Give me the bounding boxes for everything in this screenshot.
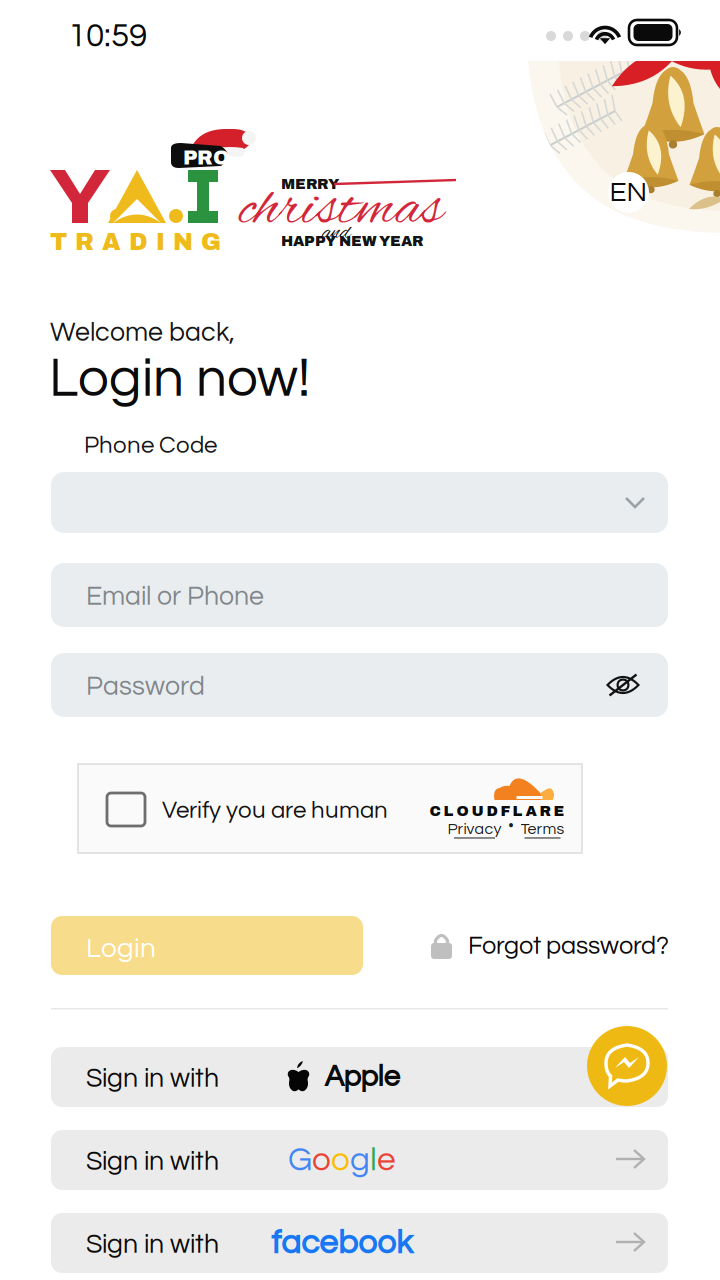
staticText: • [508,818,513,833]
staticText: and [322,219,351,247]
staticText: G [288,1143,312,1177]
staticText: Welcome back, [50,319,235,346]
staticText: PRO [183,147,230,169]
button[interactable]: Sign in with [51,1130,668,1190]
button[interactable]: Phone Code [51,472,668,533]
staticText: 10:59 [68,19,147,53]
staticText: EN [609,178,647,207]
staticText: Email or Phone [86,583,264,610]
button[interactable]: Sign in with [51,1047,668,1107]
staticText: Forgot password? [468,933,669,959]
button[interactable]: Show password [606,673,640,697]
staticText: e [377,1143,396,1177]
button[interactable]: Verify you are human [78,764,582,853]
staticText: o [312,1143,331,1177]
staticText: Privacy [447,821,501,837]
staticText: Terms [520,821,564,837]
staticText: Login [86,934,156,963]
button[interactable]: Login [51,916,363,975]
staticText: MERRY [281,176,339,192]
staticText: Password [86,673,205,700]
staticText: C L O U D F L A R E [429,803,564,819]
staticText: Verify you are human [162,798,388,823]
staticText: Sign in with [86,1148,219,1175]
staticText: Sign in with [86,1065,219,1092]
staticText: o [331,1143,350,1177]
staticText: Login now! [49,351,310,407]
button[interactable]: Sign in with [51,1213,668,1273]
button[interactable]: Forgot password? [431,926,669,966]
staticText: Phone Code [84,433,217,458]
staticText: facebook [271,1226,413,1260]
staticText: T R A D I N G [50,229,221,255]
staticText: Apple [324,1062,399,1092]
button[interactable]: EN [604,172,653,213]
staticText: g [350,1143,370,1177]
staticText: Sign in with [86,1231,219,1258]
button[interactable]: Messenger [587,1026,667,1106]
staticText: christmas [239,172,443,249]
staticText: l [370,1143,377,1177]
staticText: HAPPY NEW YEAR [281,233,423,249]
